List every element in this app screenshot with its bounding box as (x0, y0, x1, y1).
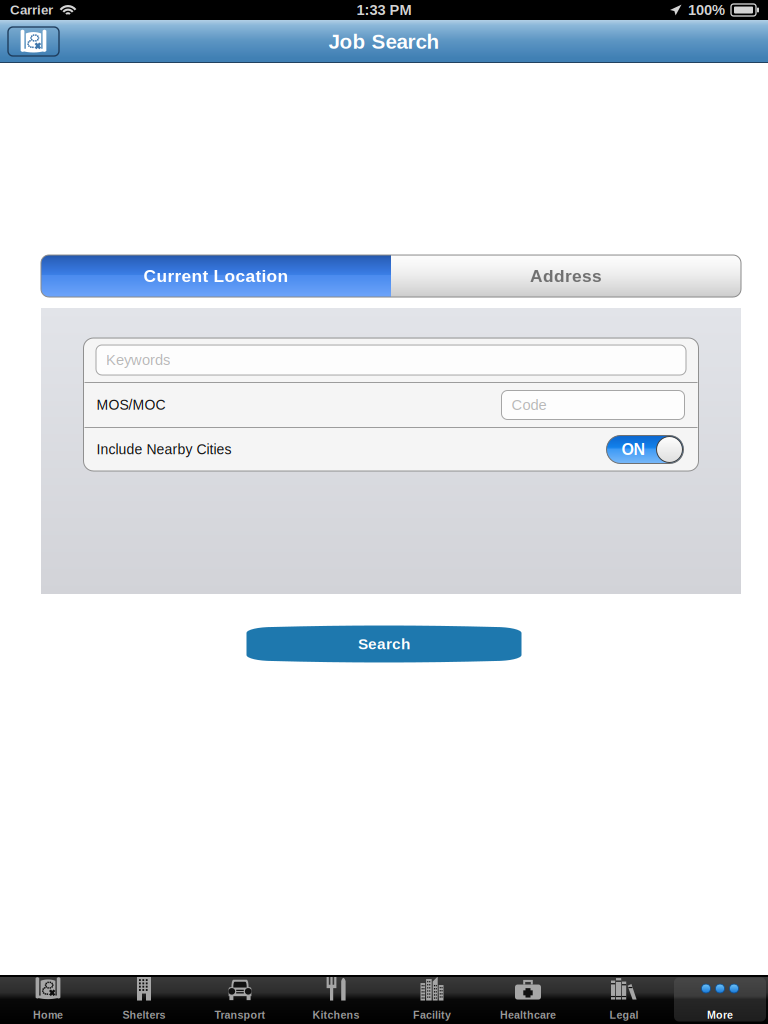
staticText: Kitchens (312, 1009, 359, 1021)
button[interactable]: Current Location (41, 255, 391, 297)
staticText: Search (358, 635, 410, 652)
button[interactable]: Keywords (96, 345, 686, 375)
button[interactable]: Address (391, 255, 741, 297)
staticText: Include Nearby Cities (96, 442, 231, 457)
staticText: Legal (609, 1009, 638, 1021)
button[interactable]: Search (246, 627, 521, 661)
staticText: ON (621, 441, 645, 458)
button[interactable]: Home (0, 976, 96, 1023)
button[interactable]: Kitchens (288, 976, 384, 1023)
button[interactable]: Facility (384, 976, 480, 1023)
staticText: Shelters (122, 1009, 165, 1021)
staticText: More (707, 1009, 733, 1021)
staticText: Facility (413, 1009, 451, 1021)
staticText: Job Search (328, 30, 439, 53)
button[interactable]: Legal (576, 976, 672, 1023)
button[interactable]: More (672, 976, 768, 1023)
button[interactable]: Map (8, 27, 59, 56)
button[interactable]: Include Nearby Cities (606, 435, 683, 463)
staticText: Address (530, 266, 602, 286)
button[interactable]: Transport (192, 976, 288, 1023)
staticText: Code (511, 397, 546, 413)
staticText: Current Location (143, 266, 288, 286)
staticText: MOS/MOC (96, 397, 165, 413)
button[interactable]: Healthcare (480, 976, 576, 1023)
button[interactable]: Shelters (96, 976, 192, 1023)
staticText: Keywords (106, 352, 170, 368)
button[interactable]: Code (501, 390, 684, 419)
staticText: Carrier (10, 3, 53, 17)
staticText: Healthcare (500, 1009, 556, 1021)
staticText: 1:33 PM (356, 2, 411, 18)
staticText: Home (33, 1009, 63, 1021)
staticText: 100% (688, 2, 725, 18)
staticText: Transport (214, 1009, 265, 1021)
